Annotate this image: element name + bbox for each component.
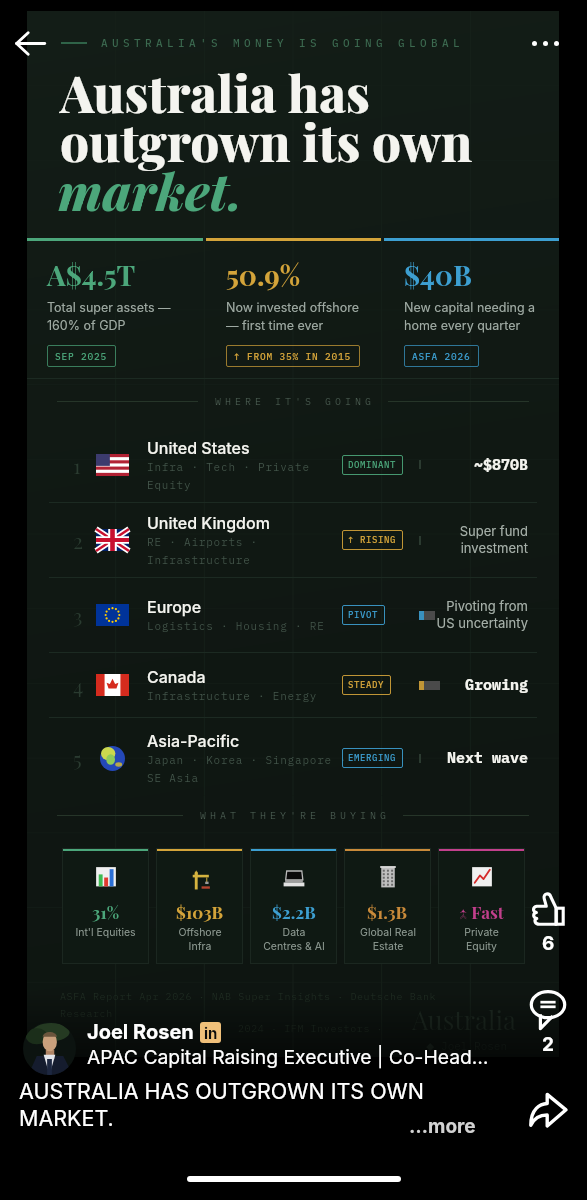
staticText: AUSTRALIA HAS OUTGROWN ITS OWN MARKET.	[19, 1078, 424, 1132]
button[interactable]: 3	[27, 578, 559, 652]
staticText: New capital needing a home every quarter	[404, 300, 536, 333]
staticText: Private Equity	[464, 926, 499, 953]
staticText: $103B	[176, 901, 223, 924]
staticText: Next wave	[446, 748, 528, 768]
staticText: $2.2B	[272, 901, 316, 924]
staticText: 1	[73, 451, 81, 479]
button[interactable]: $2.2B	[250, 848, 337, 964]
staticText: outgrown its own	[60, 107, 473, 175]
button[interactable]: 2	[27, 503, 559, 577]
staticText: 50.9%	[226, 256, 301, 293]
staticText: 5	[73, 744, 82, 772]
staticText: AUSTRALIA'S MONEY IS GOING GLOBAL	[101, 36, 464, 50]
staticText: 6	[542, 932, 555, 955]
staticText: Australia has	[60, 58, 370, 126]
staticText: ↑ RISING	[348, 534, 397, 546]
staticText: 2024 · IFM Investors ·	[238, 1022, 384, 1035]
staticText: 31%	[92, 901, 120, 924]
button[interactable]: Comment	[518, 990, 578, 1056]
staticText: Growing	[464, 675, 528, 695]
staticText: Infra · Tech · Private Equity	[147, 460, 310, 492]
staticText: Super fund investment	[459, 523, 528, 557]
staticText: ↑ Fast	[459, 901, 504, 924]
button[interactable]: Joel Rosen	[0, 1018, 587, 1078]
button[interactable]: 1	[27, 427, 559, 502]
button[interactable]: Like	[518, 890, 578, 955]
staticText: Canada	[147, 667, 206, 686]
staticText: Global Real Estate	[360, 926, 416, 953]
button[interactable]: 31%	[62, 848, 149, 964]
staticText: ◆ Joel Rosen	[426, 1039, 508, 1053]
staticText: DOMINANT	[348, 459, 397, 471]
staticText: Japan · Korea · Singapore · SE Asia	[147, 753, 347, 785]
staticText: United Kingdom	[147, 513, 270, 532]
staticText: A$4.5T	[47, 256, 136, 293]
staticText: EMERGING	[348, 752, 397, 764]
staticText: ~$870B	[473, 455, 528, 475]
staticText: STEADY	[348, 679, 385, 691]
staticText: Logistics · Housing · RE	[147, 619, 325, 633]
staticText: PIVOT	[348, 609, 379, 621]
staticText: RE · Airports · Infrastructure	[147, 535, 258, 567]
staticText: Now invested offshore — first time ever	[226, 300, 360, 333]
button[interactable]: ↑ Fast	[438, 848, 525, 964]
staticText: ASFA Report Apr 2026 · NAB Super Insight…	[60, 990, 437, 1019]
staticText: 2	[73, 526, 84, 554]
staticText: Data Centres & AI	[263, 926, 325, 953]
staticText: Offshore Infra	[178, 926, 222, 953]
staticText: 4	[73, 671, 84, 699]
button[interactable]: $103B	[156, 848, 243, 964]
staticText: United States	[147, 438, 250, 457]
staticText: market.	[58, 156, 243, 224]
staticText: Int'l Equities	[75, 926, 136, 939]
button[interactable]: 5	[27, 718, 559, 798]
button[interactable]: $1.3B	[344, 848, 431, 964]
staticText: Joel Rosen	[87, 1020, 194, 1044]
staticText: $40B	[404, 256, 472, 293]
button[interactable]: …more	[409, 1115, 476, 1138]
staticText: Total super assets — 160% of GDP	[47, 300, 171, 333]
button[interactable]: Back	[8, 21, 52, 65]
staticText: WHERE IT'S GOING	[213, 395, 373, 408]
staticText: SEP 2025	[55, 350, 108, 362]
staticText: WHAT THEY'RE BUYING	[198, 809, 388, 822]
staticText: Asia-Pacific	[147, 731, 240, 750]
staticText: 2	[542, 1033, 554, 1056]
staticText: 3	[73, 601, 83, 629]
staticText: $1.3B	[367, 901, 408, 924]
staticText: Europe	[147, 597, 202, 616]
staticText: ↑ FROM 35% IN 2015	[234, 350, 352, 362]
button[interactable]: More options	[532, 21, 576, 65]
staticText: ASFA 2026	[412, 350, 471, 362]
button[interactable]: Share	[518, 1086, 578, 1134]
staticText: Pivoting from US uncertainty	[436, 598, 528, 632]
staticText: Infrastructure · Energy	[147, 689, 318, 703]
staticText: Australia	[412, 1002, 517, 1037]
staticText: APAC Capital Raising Executive | Co-Head…	[87, 1045, 489, 1068]
staticText: in	[204, 1024, 218, 1042]
button[interactable]: 4	[27, 653, 559, 717]
